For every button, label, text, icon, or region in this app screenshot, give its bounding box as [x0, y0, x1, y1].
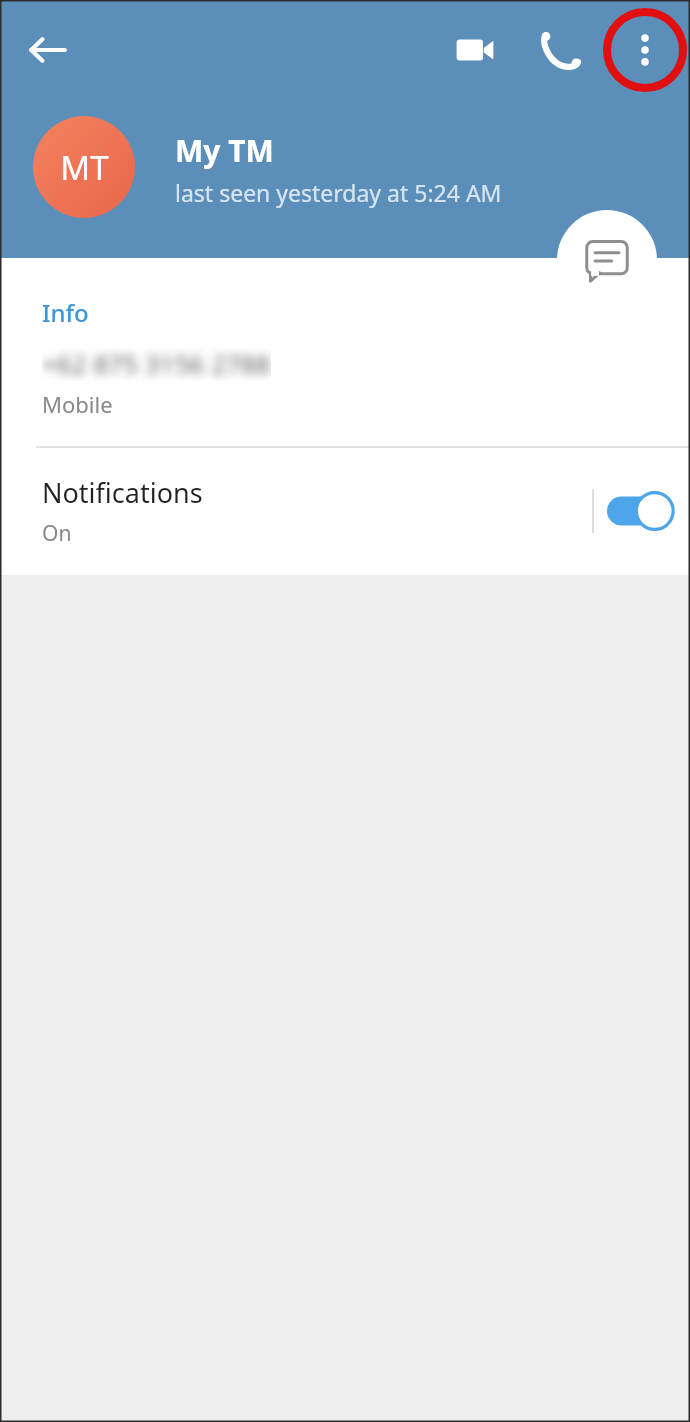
staticText: MT [60, 145, 109, 190]
staticText: On [42, 519, 72, 548]
button[interactable]: Send message [557, 210, 657, 310]
button[interactable]: More options [611, 16, 679, 84]
button[interactable]: Back [14, 16, 82, 84]
staticText: Info [42, 296, 89, 329]
button[interactable]: Notifications [0, 447, 690, 575]
staticText: My TM [175, 130, 274, 171]
button[interactable]: MT [33, 116, 135, 218]
button[interactable]: Notifications toggle [594, 447, 690, 575]
button[interactable]: +62 875 3156 2788 [0, 340, 690, 450]
staticText: +62 875 3156 2788 [42, 346, 271, 381]
button[interactable]: Call [526, 16, 594, 84]
button[interactable]: Video call [441, 16, 509, 84]
staticText: Mobile [42, 389, 113, 419]
staticText: Notifications [42, 474, 203, 511]
staticText: last seen yesterday at 5:24 AM [175, 177, 502, 208]
